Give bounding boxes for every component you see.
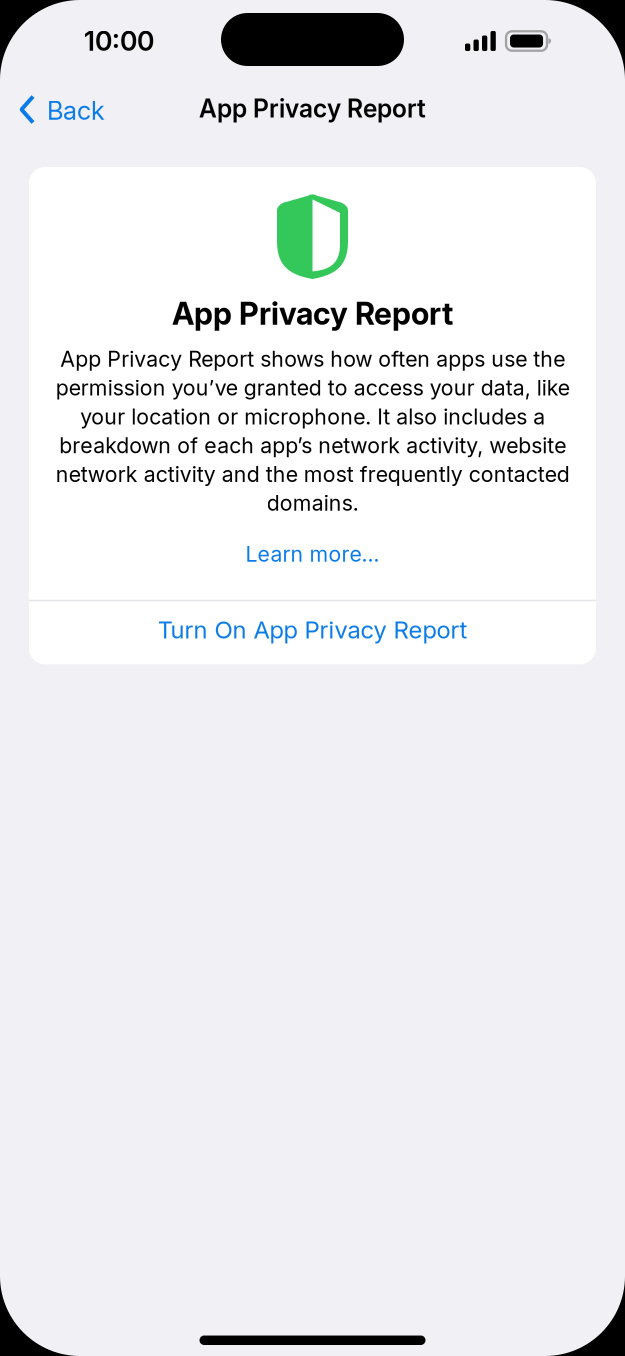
staticText: App Privacy Report shows how often apps …	[55, 346, 569, 516]
staticText: App Privacy Report	[199, 94, 426, 123]
staticText: App Privacy Report	[172, 295, 453, 332]
staticText: Turn On App Privacy Report	[157, 615, 467, 644]
staticText: Learn more…	[245, 541, 379, 567]
staticText: Back	[47, 95, 105, 126]
button[interactable]: Learn more…	[235, 537, 389, 571]
staticText: 10:00	[84, 25, 154, 57]
button[interactable]: Turn On App Privacy Report	[29, 601, 596, 664]
button[interactable]: Back	[0, 83, 121, 135]
